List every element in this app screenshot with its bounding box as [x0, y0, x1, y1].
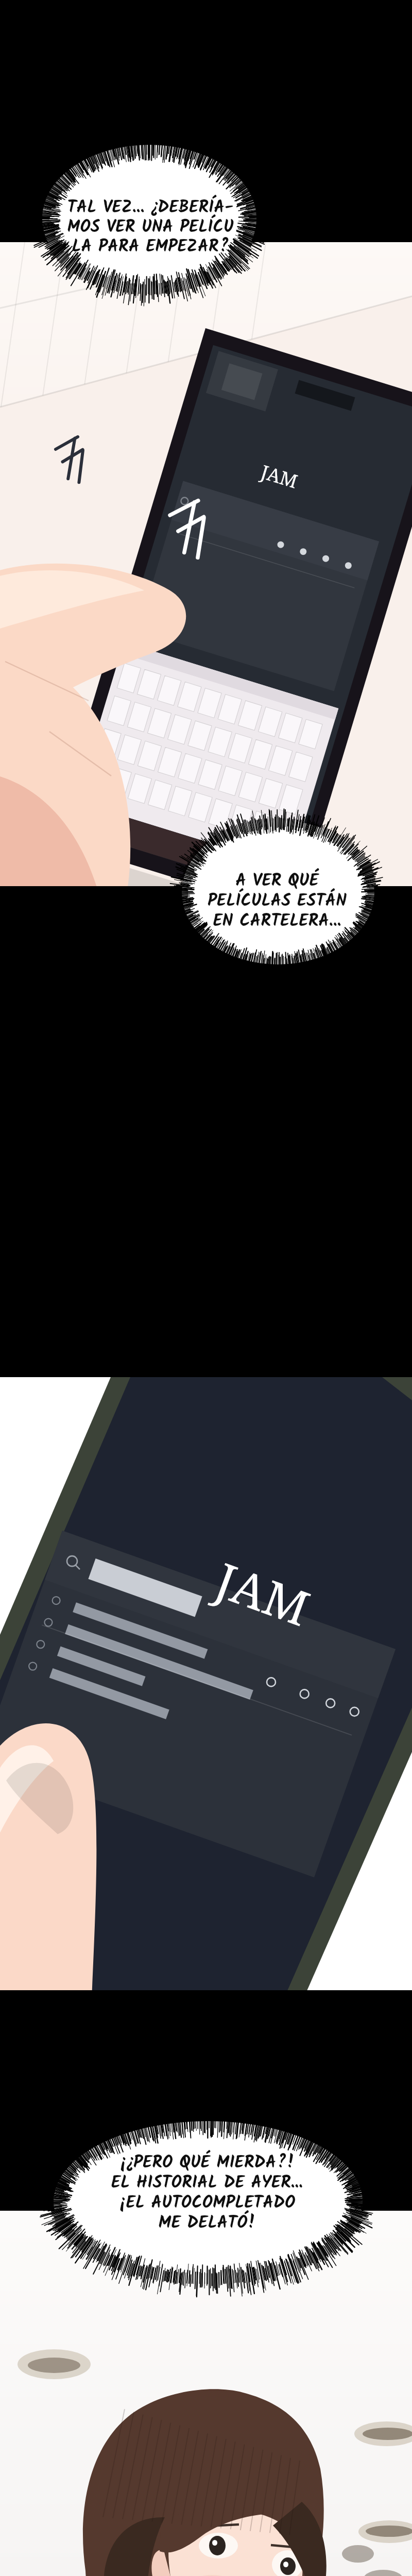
button[interactable]: JAM — [0, 0, 412, 2576]
staticText: ¡¿PERO QUÉ MIERDA?! EL HISTORIAL DE AYER… — [42, 2149, 372, 2576]
staticText: JAM — [207, 1547, 319, 1640]
staticText: A VER QUÉ PELÍCULAS ESTÁN EN CARTELERA..… — [112, 868, 412, 2576]
staticText: JAM — [258, 459, 301, 494]
staticText: TAL VEZ... ¿DEBERÍA- MOS VER UNA PELÍCU … — [0, 194, 315, 2576]
